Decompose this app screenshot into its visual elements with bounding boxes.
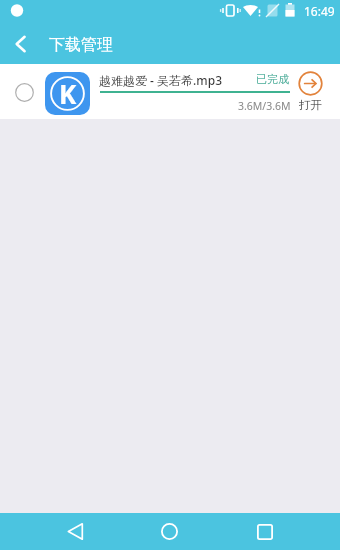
staticText: 已完成	[256, 72, 289, 86]
staticText: 越难越爱 - 吴若希.mp3	[99, 72, 223, 88]
staticText: K	[59, 76, 77, 111]
button[interactable]: Select item	[0, 64, 340, 119]
staticText: 3.6M/3.6M	[238, 99, 291, 113]
button[interactable]: Back	[57, 513, 94, 550]
button[interactable]: Select item	[9, 77, 39, 107]
staticText: 16:49	[304, 3, 335, 19]
button[interactable]: Recent apps	[246, 513, 283, 550]
staticText: 下载管理	[49, 35, 113, 55]
staticText: 打开	[299, 98, 322, 112]
button[interactable]: Open	[291, 71, 329, 112]
button[interactable]: Back	[1, 24, 41, 64]
button[interactable]: Home	[151, 513, 188, 550]
